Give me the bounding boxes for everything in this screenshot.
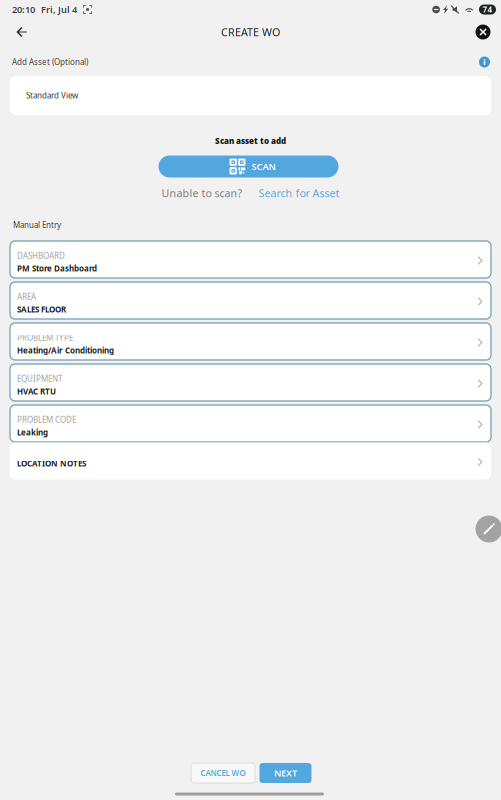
staticText: CREATE WO — [221, 25, 280, 39]
staticText: Heating/Air Conditioning — [17, 345, 114, 356]
staticText: Fri, Jul 4 — [41, 3, 77, 16]
staticText: Scan asset to add — [215, 136, 286, 146]
staticText: Standard View — [26, 90, 78, 101]
staticText: CANCEL WO — [200, 768, 245, 778]
button[interactable]: LOCATION NOTES — [10, 442, 491, 479]
button[interactable]: Information — [474, 52, 494, 72]
button[interactable]: Edit — [475, 515, 501, 542]
staticText: 74 — [482, 4, 492, 15]
button[interactable]: EQUIPMENT — [10, 364, 491, 401]
button[interactable]: SCAN — [158, 155, 338, 177]
staticText: Search for Asset — [258, 186, 339, 200]
button[interactable]: AREA — [10, 282, 491, 319]
staticText: 20:10 — [12, 3, 35, 16]
button[interactable]: CANCEL WO — [191, 763, 255, 783]
button[interactable]: Back — [8, 18, 36, 46]
staticText: PROBLEM TYPE — [17, 332, 73, 343]
staticText: LOCATION NOTES — [17, 458, 86, 469]
staticText: DASHBOARD — [17, 250, 65, 261]
staticText: Unable to scan? — [161, 186, 242, 200]
staticText: Leaking — [17, 427, 48, 438]
button[interactable]: NEXT — [259, 763, 311, 783]
staticText: HVAC RTU — [17, 386, 56, 397]
button[interactable]: Search for Asset — [254, 185, 344, 201]
staticText: PROBLEM CODE — [17, 414, 76, 425]
staticText: EQUIPMENT — [17, 373, 62, 384]
staticText: PM Store Dashboard — [17, 263, 97, 274]
button[interactable]: PROBLEM TYPE — [10, 323, 491, 360]
staticText: SCAN — [251, 160, 275, 173]
staticText: Manual Entry — [13, 220, 61, 230]
staticText: AREA — [17, 291, 36, 302]
button[interactable]: Standard View — [10, 76, 491, 115]
button[interactable]: PROBLEM CODE — [10, 405, 491, 442]
staticText: Add Asset (Optional) — [12, 57, 88, 67]
staticText: NEXT — [274, 767, 297, 779]
button[interactable]: DASHBOARD — [10, 241, 491, 278]
staticText: SALES FLOOR — [17, 304, 66, 315]
button[interactable]: Close — [469, 18, 497, 46]
